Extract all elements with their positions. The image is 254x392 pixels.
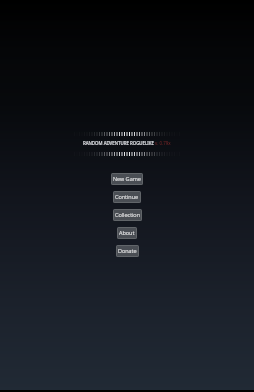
staticText: New Game: [113, 175, 141, 183]
button[interactable]: About: [117, 227, 137, 239]
button[interactable]: New Game: [111, 173, 143, 185]
button[interactable]: Collection: [113, 209, 142, 221]
staticText: Collection: [115, 211, 140, 219]
staticText: Continue: [115, 193, 139, 201]
staticText: About: [119, 229, 135, 237]
button[interactable]: Donate: [116, 245, 139, 257]
staticText: Donate: [118, 247, 137, 255]
button[interactable]: Continue: [113, 191, 141, 203]
staticText: RANDOM ADVENTURE ROGUELIKE v. 0.79x: [83, 140, 171, 146]
